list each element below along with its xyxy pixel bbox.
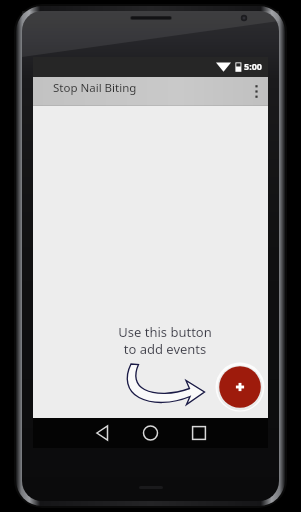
- button[interactable]: Back: [86, 418, 119, 448]
- button[interactable]: Home: [134, 418, 167, 448]
- staticText: 5:00: [244, 60, 262, 72]
- button[interactable]: Recent apps: [183, 418, 216, 448]
- button[interactable]: More options: [245, 78, 268, 104]
- button[interactable]: Add event: [219, 366, 261, 408]
- staticText: Stop Nail Biting: [53, 80, 137, 96]
- staticText: Use this button to add events: [104, 323, 226, 359]
